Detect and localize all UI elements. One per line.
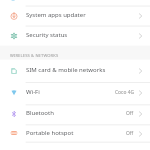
staticText: Wi-Fi xyxy=(26,88,115,96)
staticText: SIM card & mobile networks xyxy=(26,66,134,74)
button[interactable]: Security status xyxy=(0,26,150,46)
button[interactable]: System apps updater xyxy=(0,6,150,26)
staticText: WIRELESS & NETWORKS xyxy=(10,53,59,59)
button[interactable]: Portable hotspot xyxy=(0,124,150,144)
staticText: System apps updater xyxy=(26,11,134,19)
staticText: Off xyxy=(126,110,134,117)
button[interactable]: Bluetooth xyxy=(0,104,150,124)
staticText: Security status xyxy=(26,31,134,39)
staticText: Coco 4G xyxy=(115,89,134,96)
staticText: Bluetooth xyxy=(26,109,126,117)
button[interactable]: Wi-Fi xyxy=(0,82,150,104)
button[interactable]: SIM card & mobile networks xyxy=(0,60,150,82)
staticText: Portable hotspot xyxy=(26,129,126,137)
staticText: Off xyxy=(126,130,134,137)
